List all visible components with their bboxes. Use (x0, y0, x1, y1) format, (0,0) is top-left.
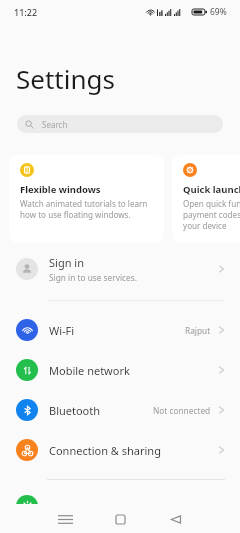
button[interactable]: Mobile network (0, 350, 240, 390)
staticText: Sign in to use services. (49, 272, 137, 283)
button[interactable]: Wi-Fi (0, 310, 240, 350)
button[interactable]: Home (106, 505, 134, 533)
button[interactable]: Sign in (0, 247, 240, 291)
staticText: Mobile network (49, 363, 217, 378)
button[interactable]: Search (17, 115, 223, 133)
staticText: 69% (210, 6, 227, 18)
staticText: Search (42, 119, 68, 130)
staticText: Sign in (49, 255, 84, 270)
staticText: Quick launch (183, 183, 240, 196)
staticText: Bluetooth (49, 403, 153, 418)
button[interactable]: Flexible windows (9, 155, 164, 243)
staticText: Watch animated tutorials to learn how to… (20, 198, 148, 220)
staticText: Settings (16, 61, 115, 96)
staticText: Connection & sharing (49, 443, 217, 458)
button[interactable]: Connection & sharing (0, 430, 240, 470)
staticText: Open quick functions like payment codes … (183, 198, 240, 231)
button[interactable]: Back (162, 505, 190, 533)
staticText: Flexible windows (20, 183, 101, 196)
staticText: 11:22 (14, 6, 38, 18)
button[interactable]: Recents (51, 505, 79, 533)
button[interactable]: Quick launch (172, 155, 240, 243)
staticText: Rajput (185, 325, 211, 336)
button[interactable]: Display & brightness (0, 486, 240, 526)
staticText: Not connected (153, 405, 211, 416)
staticText: Wi-Fi (49, 323, 185, 338)
button[interactable]: Bluetooth (0, 390, 240, 430)
